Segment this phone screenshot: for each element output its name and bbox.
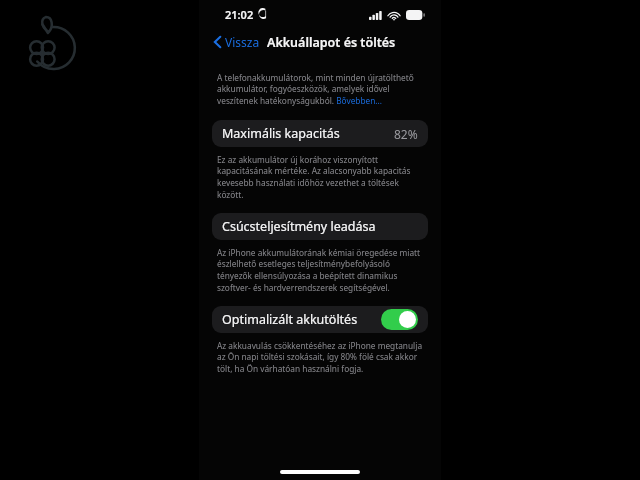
staticText: A telefonakkumulátorok, mint minden újra… bbox=[217, 72, 427, 106]
staticText: Ez az akkumulátor új korához viszonyítot… bbox=[217, 154, 427, 200]
staticText: Maximális kapacitás bbox=[222, 125, 340, 142]
button[interactable]: Optimalizált akkutöltés bbox=[212, 306, 428, 333]
staticText: Vissza bbox=[225, 34, 260, 50]
button[interactable]: Vissza bbox=[211, 30, 263, 54]
staticText: Akkuállapot és töltés bbox=[267, 34, 396, 51]
button[interactable]: Csúcsteljesítmény leadása bbox=[212, 213, 428, 240]
staticText: Optimalizált akkutöltés bbox=[222, 311, 358, 328]
staticText: 82% bbox=[394, 126, 418, 142]
button[interactable]: Optimalizált akkutöltés kapcsoló bbox=[381, 309, 418, 330]
button[interactable]: Maximális kapacitás bbox=[212, 120, 428, 147]
staticText: Csúcsteljesítmény leadása bbox=[222, 218, 376, 235]
staticText: 21:02 bbox=[225, 7, 254, 22]
staticText: Az iPhone akkumulátorának kémiai öregedé… bbox=[217, 247, 427, 293]
staticText: Az akkuavulás csökkentéséhez az iPhone m… bbox=[217, 340, 427, 374]
